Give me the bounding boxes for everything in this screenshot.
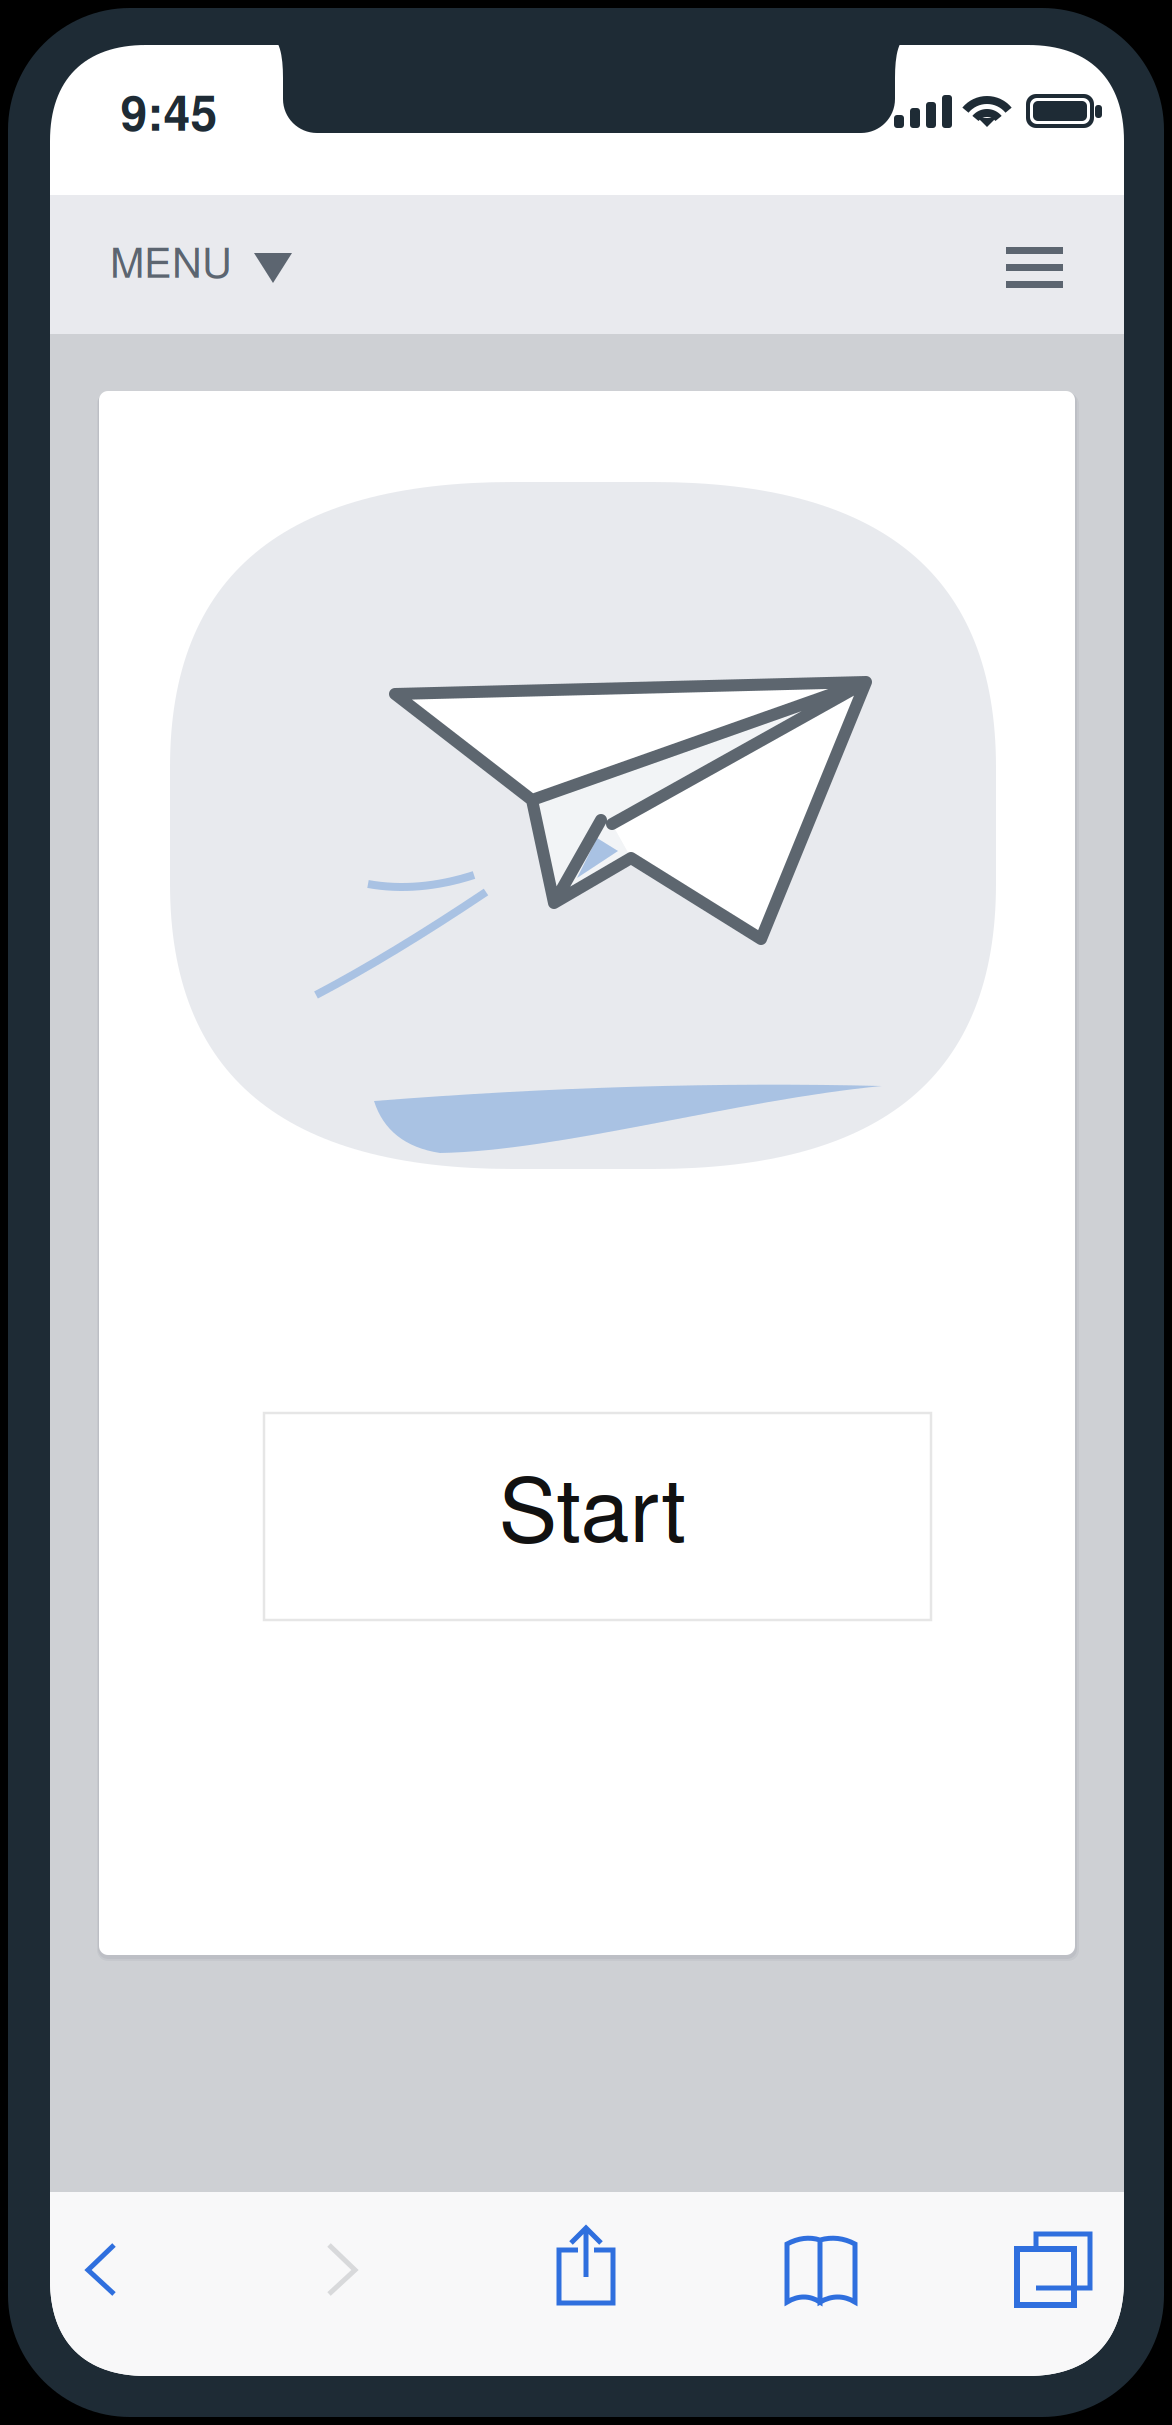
button[interactable]: Tabs xyxy=(0,0,1172,2425)
button[interactable]: Bookmarks xyxy=(0,0,1172,2425)
button[interactable]: Start xyxy=(0,0,1172,2425)
staticText: Start xyxy=(498,1441,685,1567)
button[interactable]: Back xyxy=(0,0,1172,2425)
button[interactable]: Menu xyxy=(0,0,1172,2425)
staticText: 9:45 xyxy=(120,77,217,145)
button[interactable]: Share xyxy=(0,0,1172,2425)
button[interactable]: MENU xyxy=(0,0,1172,2425)
button[interactable]: Forward xyxy=(0,0,1172,2425)
staticText: MENU xyxy=(110,230,232,290)
